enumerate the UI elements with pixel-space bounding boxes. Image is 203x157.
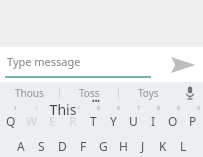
staticText: 2 [35,105,38,112]
button[interactable]: Q [0,104,21,132]
staticText: 7 [137,105,140,112]
staticText: 3 [56,105,59,112]
staticText: R [69,113,77,129]
button[interactable]: I [143,104,163,132]
button[interactable]: Y [103,104,123,132]
button[interactable]: O [163,104,183,132]
staticText: U [129,113,138,129]
staticText: Y [110,113,117,129]
staticText: I [151,113,156,129]
staticText: L [180,138,187,154]
staticText: J [141,138,145,154]
button[interactable]: A [10,134,31,157]
button[interactable]: Thous [0,82,59,104]
button[interactable]: F [73,134,93,157]
button[interactable]: S [31,134,52,157]
staticText: 4 [77,105,80,112]
button[interactable]: W [21,104,42,132]
staticText: K [159,138,167,154]
staticText: Type message [7,54,81,69]
staticText: Q [6,113,16,129]
staticText: E [49,113,56,129]
button[interactable]: E [42,104,63,132]
staticText: 1 [14,105,17,112]
staticText: Thous [15,86,44,100]
button[interactable]: Type message [0,47,158,82]
staticText: G [99,138,108,154]
staticText: 8 [157,105,160,112]
button[interactable]: Toss [60,82,118,104]
staticText: Toss [79,86,100,100]
staticText: W [26,113,38,129]
button[interactable]: Send [163,47,203,82]
staticText: 5 [97,105,100,112]
staticText: F [80,138,87,154]
button[interactable]: Toys [119,82,177,104]
staticText: P [189,113,197,129]
button[interactable]: Voice input [177,82,203,104]
staticText: H [119,138,128,154]
staticText: ••• [92,97,100,107]
staticText: 9 [177,105,180,112]
button[interactable]: G [93,134,113,157]
staticText: 6 [117,105,120,112]
button[interactable]: T [83,104,103,132]
button[interactable]: D [52,134,73,157]
button[interactable]: K [153,134,173,157]
button[interactable]: H [113,134,133,157]
staticText: A [17,138,25,154]
staticText: Toys [138,86,159,100]
staticText: T [90,113,97,129]
staticText: This [43,100,83,119]
button[interactable]: R [63,104,83,132]
button[interactable]: P [183,104,203,132]
button[interactable]: J [133,134,153,157]
button[interactable]: L [173,134,193,157]
button[interactable]: U [123,104,143,132]
staticText: 0 [197,105,200,112]
staticText: S [38,138,45,154]
staticText: O [168,113,178,129]
staticText: D [58,138,67,154]
